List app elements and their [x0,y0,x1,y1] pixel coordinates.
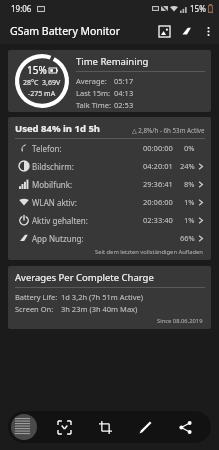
staticText: 00:00:00 [143,143,173,153]
staticText: 15% [190,3,206,14]
staticText: Mobilfunk: [32,179,73,190]
staticText: 04:13 [114,88,134,98]
button[interactable]: Share [171,413,199,441]
staticText: 0% [184,143,195,153]
staticText: 1d 3,2h (7h 51m Active) [61,292,144,302]
staticText: 02:53 [114,100,134,110]
button[interactable]: Draw [131,413,159,441]
staticText: 19:06 [11,3,32,14]
staticText: 15% [27,63,47,77]
staticText: GSam Battery Monitor [10,24,121,38]
button[interactable]: Telefon: [15,139,205,157]
staticText: 28°C 3,69V [23,78,61,88]
button[interactable]: Image [153,20,175,42]
staticText: WLAN aktiv: [32,197,77,208]
button[interactable]: WLAN aktiv: [15,193,205,211]
staticText: 29:36:41 [143,179,173,189]
button[interactable]: 15% [8,50,211,112]
staticText: App Nutzung: [32,233,84,244]
staticText: Average: [76,76,107,86]
staticText: 8% [184,179,195,189]
staticText: 1% [184,197,195,207]
staticText: Telefon: [32,143,62,154]
staticText: 04:20:01 [143,161,173,171]
button[interactable]: Crop [91,413,119,441]
button[interactable]: More options [197,20,219,42]
button[interactable]: Select [50,413,78,441]
staticText: 3h 23m (3h 40m Max) [61,304,138,314]
button[interactable]: Bildschirm: [15,157,205,175]
staticText: Seit dem letzten vollständigen Aufladen [95,248,203,256]
staticText: Bildschirm: [32,161,74,172]
button[interactable]: Charts [175,20,197,42]
staticText: 02:33:40 [143,215,173,225]
staticText: 24% [180,161,195,171]
button[interactable]: Screenshot preview [11,414,37,440]
staticText: Since 08.06.2019 [157,317,203,325]
staticText: Used 84% in 1d 5h [15,122,101,135]
staticText: 05:17 [114,76,134,86]
staticText: Time Remaining [76,55,149,68]
button[interactable]: Averages Per Complete Charge [8,266,211,329]
staticText: Screen On: [15,304,54,314]
staticText: 20:06:00 [143,197,173,207]
staticText: Aktiv gehalten: [32,215,88,226]
staticText: -275 mA [28,89,56,99]
button[interactable]: App Nutzung: [15,229,205,247]
staticText: Averages Per Complete Charge [15,271,154,284]
button[interactable]: Mobilfunk: [15,175,205,193]
staticText: Last 15m: [76,88,110,98]
button[interactable]: Aktiv gehalten: [15,211,205,229]
staticText: Talk Time: [76,100,112,110]
staticText: △ 2,8%/h - 6h 53m Active [132,126,205,134]
staticText: 66% [180,233,195,243]
staticText: 1% [184,215,195,225]
staticText: Battery Life: [15,292,58,302]
